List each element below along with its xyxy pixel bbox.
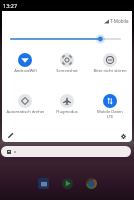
button[interactable]: Bitte nicht stören (90, 53, 130, 74)
button[interactable]: AndroidWifi (5, 53, 45, 74)
staticText: 13:27 (3, 2, 18, 9)
button[interactable]: Edit tiles (3, 128, 17, 142)
button[interactable]: Automatisch drehen (5, 94, 45, 115)
button[interactable]: Search (1, 146, 131, 157)
staticText: Screenshot (56, 68, 78, 74)
button[interactable]: Chrome (86, 178, 97, 189)
button[interactable]: Flugmodus (47, 94, 87, 115)
staticText: Bitte nicht stören (93, 68, 127, 74)
staticText: T-Mobile (110, 18, 129, 24)
button[interactable]: Play Store (62, 178, 73, 189)
staticText: Mobile Daten (97, 109, 123, 115)
staticText: AndroidWifi (14, 68, 37, 74)
button[interactable]: Screenshot (47, 53, 87, 74)
button[interactable]: Mobile Daten (90, 94, 130, 115)
staticText: Flugmodus (56, 109, 78, 115)
staticText: Automatisch drehen (6, 109, 44, 115)
button[interactable]: Gmail (38, 178, 49, 189)
staticText: LTE (98, 114, 122, 119)
button[interactable]: Settings (116, 129, 130, 142)
